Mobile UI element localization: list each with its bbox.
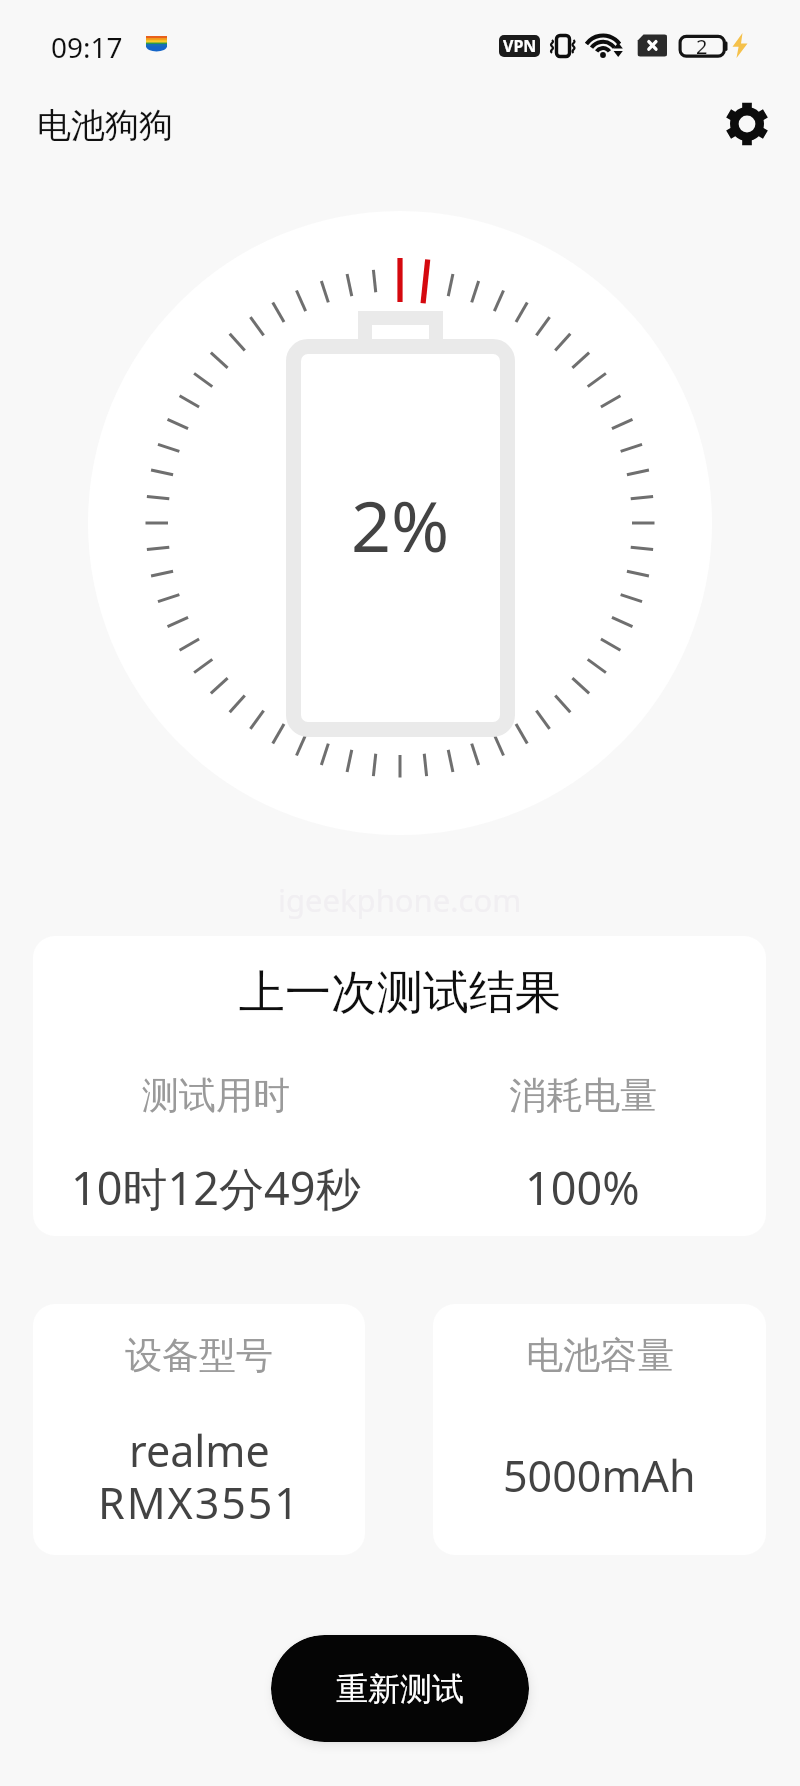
staticText: RMX3551 [98,1473,301,1532]
staticText: VPN [503,35,537,57]
staticText: 设备型号 [125,1332,273,1379]
staticText: 上一次测试结果 [239,964,561,1022]
staticText: 10时12分49秒 [71,1157,361,1218]
staticText: 2% [351,477,450,569]
staticText: 电池狗狗 [37,104,173,147]
staticText: 5000mAh [503,1446,696,1505]
button[interactable]: 重新测试 [271,1635,529,1742]
staticText: 电池容量 [526,1332,674,1379]
button[interactable]: Settings [716,93,778,155]
staticText: igeekphone.com [278,879,522,921]
staticText: 100% [525,1157,640,1218]
staticText: 2 [696,33,708,59]
staticText: 09:17 [51,28,123,66]
button[interactable]: 电池容量 [433,1304,766,1555]
staticText: realme [129,1421,270,1480]
staticText: 测试用时 [142,1072,290,1119]
staticText: 重新测试 [336,1669,464,1709]
button[interactable]: 上一次测试结果 [33,936,766,1236]
staticText: 消耗电量 [509,1072,657,1119]
button[interactable]: 设备型号 [33,1304,365,1555]
